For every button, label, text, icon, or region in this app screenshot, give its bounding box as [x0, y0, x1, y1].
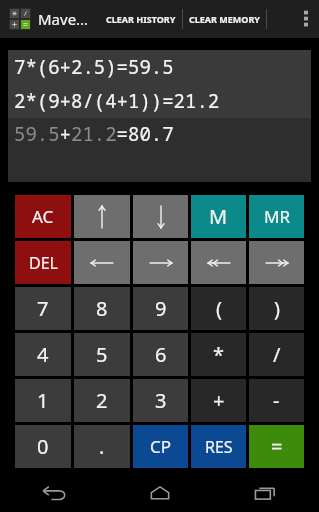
button[interactable]: UP	[74, 195, 130, 238]
staticText: DEL	[29, 252, 58, 274]
staticText: 5	[96, 341, 108, 368]
staticText: (	[216, 295, 222, 322]
button[interactable]: AC	[15, 195, 71, 238]
staticText: 4	[37, 341, 49, 368]
staticText: 6	[155, 341, 167, 368]
staticText: .	[99, 433, 105, 460]
staticText: 7*(6+2.5)=59.5	[14, 54, 174, 80]
button[interactable]: +	[191, 379, 246, 422]
staticText: 7	[37, 295, 49, 322]
staticText: /	[273, 341, 281, 368]
staticText: CLEAR MEMORY	[189, 13, 260, 25]
staticText: 8	[96, 295, 108, 322]
button[interactable]: More options	[293, 0, 319, 38]
button[interactable]: MR	[249, 195, 304, 238]
button[interactable]: DRIGHT	[249, 241, 304, 284]
staticText: =	[271, 433, 283, 460]
button[interactable]: =	[249, 425, 304, 468]
button[interactable]: Home	[107, 474, 213, 512]
button[interactable]: 5	[74, 333, 130, 376]
button[interactable]: /	[249, 333, 304, 376]
button[interactable]: -	[249, 379, 304, 422]
staticText: Mave…	[38, 9, 88, 29]
staticText: RES	[205, 436, 233, 458]
button[interactable]: 3	[133, 379, 188, 422]
button[interactable]: 4	[15, 333, 71, 376]
staticText: CP	[150, 435, 172, 458]
staticText: 2	[96, 387, 108, 414]
staticText: +	[213, 387, 225, 414]
button[interactable]: *	[191, 333, 246, 376]
staticText: MR	[264, 205, 290, 228]
button[interactable]: LEFT	[74, 241, 130, 284]
button[interactable]: 8	[74, 287, 130, 330]
staticText: 9	[155, 295, 167, 322]
button[interactable]: (	[191, 287, 246, 330]
staticText: 3	[155, 387, 167, 414]
button[interactable]: 9	[133, 287, 188, 330]
button[interactable]: )	[249, 287, 304, 330]
button[interactable]: DLEFT	[191, 241, 246, 284]
button[interactable]: M	[191, 195, 246, 238]
button[interactable]: 6	[133, 333, 188, 376]
button[interactable]: DEL	[15, 241, 71, 284]
button[interactable]: 1	[15, 379, 71, 422]
button[interactable]: 0	[15, 425, 71, 468]
staticText: CLEAR HISTORY	[106, 13, 176, 25]
button[interactable]: 7	[15, 287, 71, 330]
staticText: 2*(9+8/(4+1))=21.2	[14, 88, 220, 114]
button[interactable]: DOWN	[133, 195, 188, 238]
button[interactable]: CLEAR HISTORY	[100, 7, 182, 31]
staticText: *	[213, 341, 225, 368]
staticText: 0	[37, 433, 49, 460]
button[interactable]: RES	[191, 425, 246, 468]
button[interactable]: Back	[0, 474, 107, 512]
button[interactable]: CP	[133, 425, 188, 468]
staticText: M	[209, 203, 228, 230]
staticText: 1	[37, 387, 49, 414]
staticText: )	[274, 295, 280, 322]
button[interactable]: CLEAR MEMORY	[183, 7, 266, 31]
button[interactable]: .	[74, 425, 130, 468]
staticText: -	[273, 387, 280, 414]
button[interactable]: RIGHT	[133, 241, 188, 284]
staticText: AC	[32, 205, 54, 228]
button[interactable]: 2	[74, 379, 130, 422]
button[interactable]: Recents	[213, 474, 319, 512]
staticText: 59.5+21.2=80.7	[14, 121, 174, 147]
